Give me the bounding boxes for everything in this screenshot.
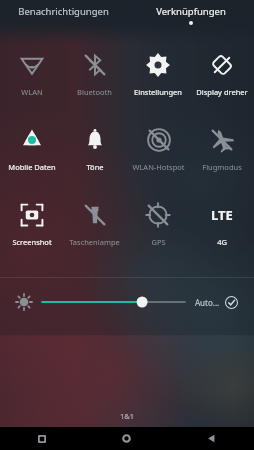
staticText: Verknüpfungen xyxy=(156,5,226,18)
button[interactable]: Taschenlampe xyxy=(63,186,126,261)
staticText: LTE xyxy=(211,206,233,224)
staticText: Auto... xyxy=(195,297,220,308)
button[interactable]: Mobile Daten xyxy=(0,111,63,186)
staticText: Benachrichtigungen xyxy=(18,5,109,18)
button[interactable]: Bluetooth xyxy=(63,36,126,111)
button[interactable]: Einstellungen xyxy=(126,36,190,111)
button[interactable]: GPS xyxy=(126,186,190,261)
staticText: Töne xyxy=(86,162,104,172)
staticText: Screenshot xyxy=(12,237,52,247)
staticText: Display dreher xyxy=(196,87,248,97)
staticText: 4G xyxy=(217,237,227,247)
button[interactable]: Benachrichtigungen xyxy=(0,0,127,30)
button[interactable]: Auto... xyxy=(195,296,238,309)
staticText: Bluetooth xyxy=(77,87,112,97)
staticText: Flugmodus xyxy=(202,162,242,172)
button[interactable]: 4G xyxy=(190,186,254,261)
button[interactable]: Display dreher xyxy=(190,36,254,111)
button[interactable]: Töne xyxy=(63,111,126,186)
button[interactable]: Verknüpfungen xyxy=(127,0,254,30)
button[interactable]: Flugmodus xyxy=(190,111,254,186)
staticText: GPS xyxy=(151,237,166,247)
staticText: 1&1 xyxy=(120,411,135,421)
staticText: Taschenlampe xyxy=(69,237,120,247)
button[interactable]: Startbildschirm xyxy=(84,427,169,450)
button[interactable]: Zurück xyxy=(169,427,254,450)
staticText: Mobile Daten xyxy=(8,162,56,172)
button[interactable]: Letzte Apps xyxy=(0,427,84,450)
staticText: Einstellungen xyxy=(134,87,182,97)
staticText: WLAN xyxy=(21,87,43,97)
button[interactable]: WLAN-Hotspot xyxy=(126,111,190,186)
button[interactable]: WLAN xyxy=(0,36,63,111)
staticText: WLAN-Hotspot xyxy=(132,162,185,172)
button[interactable]: Helligkeit xyxy=(42,292,185,312)
button[interactable]: Screenshot xyxy=(0,186,63,261)
